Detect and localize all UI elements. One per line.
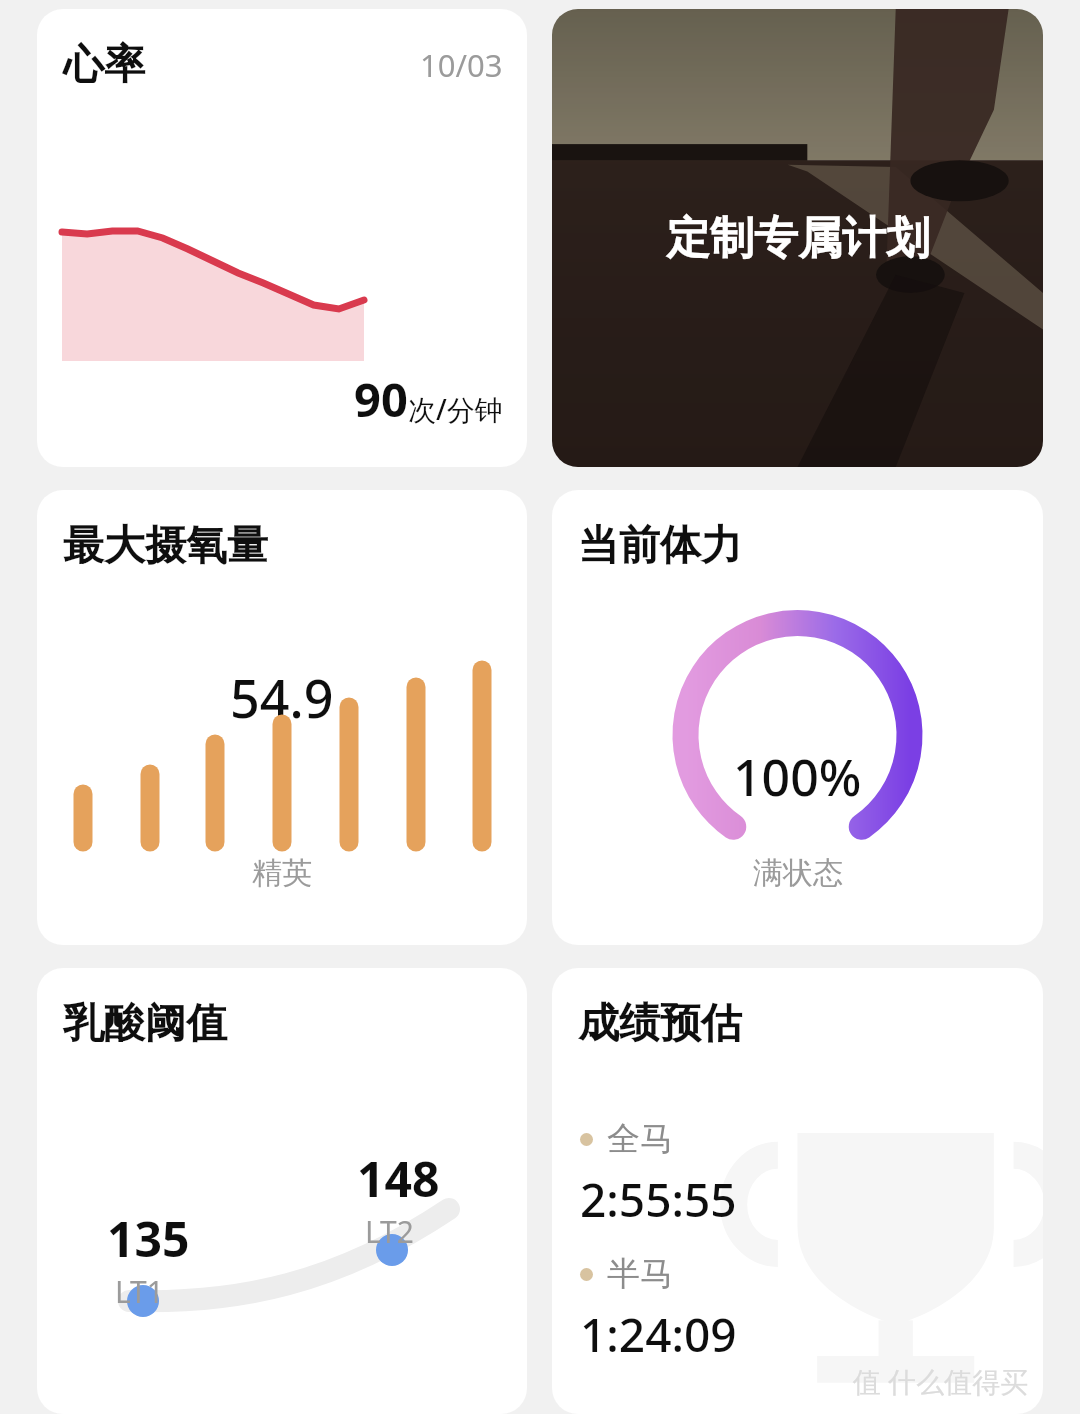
staticText: 2:55:55 xyxy=(580,1168,737,1231)
staticText: 半马 xyxy=(607,1253,673,1295)
staticText: 当前体力 xyxy=(578,520,742,572)
staticText: 值 什么值得买 xyxy=(853,1362,1029,1400)
staticText: 精英 xyxy=(252,854,312,892)
staticText: 10/03 xyxy=(420,44,503,86)
staticText: LT1 xyxy=(115,1271,164,1312)
staticText: 135 xyxy=(107,1206,190,1271)
staticText: 乳酸阈值 xyxy=(63,998,227,1050)
staticText: 148 xyxy=(357,1146,440,1211)
staticText: 全马 xyxy=(607,1118,673,1160)
button[interactable]: 当前体力 xyxy=(552,490,1043,945)
button[interactable]: 成绩预估 xyxy=(552,968,1043,1414)
staticText: 定制专属计划 xyxy=(666,211,930,266)
staticText: 100% xyxy=(733,743,862,811)
staticText: 1:24:09 xyxy=(580,1303,737,1366)
staticText: 成绩预估 xyxy=(578,998,742,1050)
staticText: LT2 xyxy=(365,1211,414,1252)
button[interactable]: 乳酸阈值 xyxy=(37,968,527,1414)
staticText: 心率 xyxy=(63,39,145,91)
staticText: 次/分钟 xyxy=(408,390,503,428)
staticText: 54.9 xyxy=(230,662,334,733)
staticText: 最大摄氧量 xyxy=(63,520,268,572)
button[interactable]: 心率 xyxy=(37,9,527,467)
button[interactable]: 定制专属计划 xyxy=(552,9,1043,467)
button[interactable]: 最大摄氧量 xyxy=(37,490,527,945)
staticText: 满状态 xyxy=(753,854,843,892)
staticText: 90 xyxy=(354,367,408,431)
